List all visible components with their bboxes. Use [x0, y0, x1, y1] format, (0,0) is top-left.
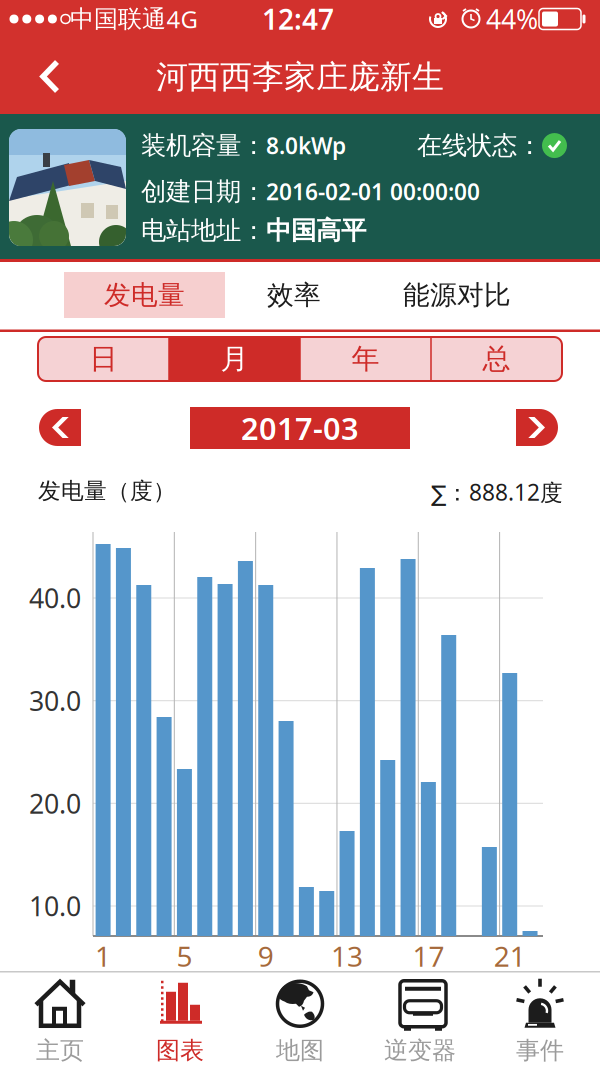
staticText: 中国联通: [70, 4, 166, 34]
staticText: 主页: [36, 1036, 84, 1065]
staticText: 40.0: [29, 580, 81, 616]
staticText: ∑：888.12度: [431, 477, 563, 507]
staticText: 地图: [276, 1036, 324, 1065]
button[interactable]: 能源对比: [382, 272, 532, 318]
staticText: 效率: [267, 279, 321, 311]
staticText: 4G: [166, 3, 197, 35]
staticText: 图表: [156, 1036, 204, 1065]
staticText: 河西西李家庄庞新生: [156, 57, 444, 97]
staticText: 9: [258, 937, 274, 975]
button[interactable]: 月: [169, 337, 300, 381]
staticText: 月: [220, 342, 248, 376]
staticText: 20.0: [29, 786, 81, 821]
staticText: 发电量: [104, 279, 185, 311]
staticText: 事件: [516, 1036, 564, 1065]
button[interactable]: Previous month: [39, 409, 81, 446]
staticText: 1: [95, 937, 111, 975]
button[interactable]: 年: [300, 337, 431, 381]
staticText: 日: [89, 342, 117, 376]
button[interactable]: Next month: [516, 409, 558, 446]
button[interactable]: 地图: [245, 978, 355, 1065]
staticText: 总: [482, 342, 510, 376]
staticText: 12:47: [262, 0, 334, 38]
staticText: 年: [351, 342, 379, 376]
button[interactable]: Back: [0, 0, 600, 114]
button[interactable]: 事件: [485, 978, 595, 1065]
staticText: 2017-03: [241, 408, 359, 448]
staticText: 在线状态：: [417, 130, 542, 161]
staticText: 电站地址：: [141, 215, 266, 246]
button[interactable]: 2017-03: [190, 407, 410, 449]
staticText: 能源对比: [403, 279, 511, 311]
staticText: 创建日期：: [141, 176, 266, 207]
button[interactable]: 主页: [5, 978, 115, 1065]
button[interactable]: 日: [38, 337, 169, 381]
button[interactable]: 效率: [234, 272, 354, 318]
staticText: 21: [494, 937, 526, 975]
staticText: 逆变器: [384, 1036, 456, 1065]
staticText: 10.0: [29, 888, 81, 924]
staticText: 17: [412, 937, 444, 975]
staticText: 中国高平: [266, 215, 366, 246]
staticText: 5: [176, 937, 192, 975]
button[interactable]: 发电量: [64, 272, 225, 318]
button[interactable]: 总: [431, 337, 562, 381]
button[interactable]: 逆变器: [365, 978, 475, 1065]
staticText: 2016-02-01 00:00:00: [266, 176, 480, 207]
button[interactable]: 图表: [125, 978, 235, 1065]
staticText: 30.0: [29, 683, 81, 718]
staticText: 装机容量：: [141, 130, 266, 161]
staticText: 13: [331, 937, 363, 975]
staticText: x: [294, 344, 306, 374]
staticText: 发电量（度）: [38, 477, 176, 505]
staticText: 8.0kWp: [266, 130, 346, 161]
staticText: 44%: [486, 1, 538, 37]
